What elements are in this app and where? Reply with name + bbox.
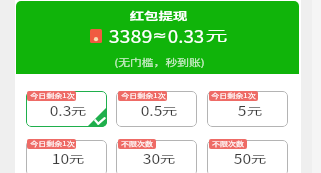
button[interactable] [207, 91, 288, 127]
staticText: 元 [68, 151, 85, 166]
staticText: 不限次数 [121, 140, 153, 148]
staticText: 0.5 [140, 101, 163, 120]
button[interactable] [116, 140, 197, 173]
staticText: 元 [161, 103, 178, 118]
staticText: 元 [159, 151, 176, 166]
other: 红包 [90, 29, 102, 43]
staticText: 3389 [108, 23, 153, 48]
button[interactable] [26, 140, 107, 173]
button[interactable] [207, 140, 288, 173]
staticText: 0.33 [168, 23, 204, 48]
staticText: 今日剩余1次 [30, 92, 75, 100]
staticText: 0.3 [49, 101, 72, 120]
staticText: ≈ [152, 27, 167, 43]
staticText: (无门槛，秒到账) [114, 55, 205, 68]
staticText: 红包提现 [129, 8, 188, 24]
staticText: 元 [250, 151, 267, 166]
button[interactable] [26, 91, 107, 127]
staticText: 元 [70, 103, 87, 118]
staticText: 不限次数 [212, 140, 244, 148]
staticText: 10 [51, 149, 69, 168]
staticText: 今日剩余1次 [211, 92, 256, 100]
staticText: 元 [205, 25, 227, 44]
staticText: 今日剩余1次 [121, 92, 166, 100]
staticText: 元 [246, 103, 263, 118]
staticText: 30 [142, 149, 160, 168]
staticText: 50 [233, 149, 251, 168]
button[interactable] [116, 91, 197, 127]
staticText: 5 [237, 101, 247, 120]
staticText: 今日剩余1次 [30, 140, 75, 148]
